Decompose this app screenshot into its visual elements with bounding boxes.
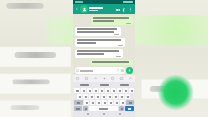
- button[interactable]: [129, 88, 134, 93]
- other: Back: [75, 7, 79, 11]
- button[interactable]: Tool 0: [75, 76, 80, 81]
- button[interactable]: [114, 83, 134, 87]
- button[interactable]: [96, 100, 101, 105]
- button[interactable]: Nav 1: [102, 112, 106, 116]
- button[interactable]: [74, 88, 80, 93]
- button[interactable]: [90, 100, 95, 105]
- button[interactable]: [84, 100, 89, 105]
- button[interactable]: Back: [73, 4, 135, 14]
- button[interactable]: Enter: [125, 106, 134, 111]
- button[interactable]: [119, 106, 124, 111]
- button[interactable]: Attach: [75, 67, 125, 74]
- button[interactable]: [119, 94, 124, 99]
- button[interactable]: [91, 16, 133, 25]
- button[interactable]: Tool 5: [119, 76, 124, 81]
- button[interactable]: [126, 100, 134, 105]
- button[interactable]: [108, 100, 113, 105]
- button[interactable]: [114, 100, 119, 105]
- button[interactable]: [111, 88, 116, 93]
- button[interactable]: [99, 88, 104, 93]
- button[interactable]: [102, 100, 107, 105]
- button[interactable]: More options: [128, 7, 133, 12]
- button[interactable]: Nav 0: [86, 112, 90, 116]
- button[interactable]: [123, 88, 128, 93]
- button[interactable]: [113, 94, 118, 99]
- button[interactable]: [89, 106, 118, 111]
- button[interactable]: Tool 6: [128, 76, 133, 81]
- button[interactable]: [77, 94, 82, 99]
- button[interactable]: Voice call: [121, 6, 128, 13]
- button[interactable]: [75, 38, 125, 47]
- button[interactable]: [117, 88, 122, 93]
- button[interactable]: Tool 4: [110, 76, 115, 81]
- button[interactable]: Send voice message: [126, 67, 133, 74]
- button[interactable]: Tool 1: [84, 76, 89, 81]
- button[interactable]: [74, 100, 83, 105]
- button[interactable]: [75, 49, 123, 58]
- button[interactable]: [83, 94, 88, 99]
- other: Camera: [121, 69, 124, 72]
- button[interactable]: [105, 88, 110, 93]
- button[interactable]: [81, 88, 86, 93]
- other: Attach: [117, 69, 120, 72]
- button[interactable]: Nav 2: [118, 112, 122, 116]
- button[interactable]: Tool 3: [102, 76, 107, 81]
- button[interactable]: [125, 94, 130, 99]
- button[interactable]: [75, 27, 121, 36]
- button[interactable]: [87, 88, 92, 93]
- button[interactable]: [74, 83, 94, 87]
- button[interactable]: [90, 60, 133, 65]
- button[interactable]: Video call: [114, 6, 121, 13]
- button[interactable]: [74, 106, 82, 111]
- button[interactable]: [93, 88, 98, 93]
- button[interactable]: [120, 100, 125, 105]
- button[interactable]: [89, 94, 94, 99]
- button[interactable]: [95, 94, 100, 99]
- button[interactable]: [94, 83, 114, 87]
- button[interactable]: Tool 2: [93, 76, 98, 81]
- button[interactable]: [107, 94, 112, 99]
- button[interactable]: [101, 94, 106, 99]
- button[interactable]: [83, 106, 88, 111]
